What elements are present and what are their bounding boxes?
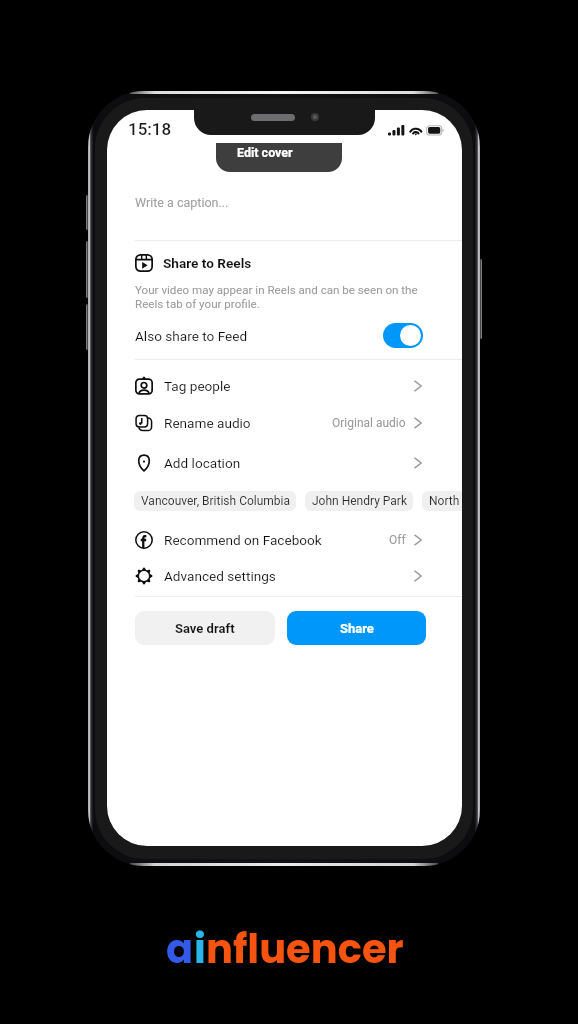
other: Open [412, 457, 424, 469]
button[interactable]: North Vancouver [422, 491, 462, 511]
staticText: Save draft [175, 621, 235, 636]
staticText: Vancouver, British Columbia [141, 494, 291, 508]
staticText: Also share to Feed [135, 328, 248, 344]
staticText: Original audio [332, 416, 406, 430]
button[interactable]: Recommend on Facebook [135, 523, 424, 557]
button[interactable]: Share [287, 611, 426, 645]
staticText: Share [340, 621, 374, 636]
button[interactable]: Tag people [135, 369, 424, 403]
button[interactable]: Also share to Feed [135, 321, 375, 351]
button[interactable]: Advanced settings [135, 559, 424, 593]
staticText: Rename audio [164, 415, 251, 431]
staticText: John Hendry Park [312, 494, 408, 508]
staticText: Your video may appear in Reels and can b… [135, 283, 418, 311]
staticText: Advanced settings [164, 568, 276, 584]
other: Open [412, 380, 424, 392]
button[interactable]: Add location [135, 446, 424, 480]
staticText: Recommend on Facebook [164, 532, 322, 548]
button[interactable] [383, 323, 423, 348]
staticText: i [194, 921, 206, 977]
button[interactable]: John Hendry Park [305, 491, 413, 511]
staticText: 15:18 [128, 119, 172, 139]
button[interactable]: Edit cover [216, 143, 342, 172]
staticText: Share to Reels [163, 255, 252, 271]
staticText: nfluencer [206, 921, 404, 977]
other: Open [412, 417, 424, 429]
other: Open [412, 570, 424, 582]
other: Open [412, 534, 424, 546]
staticText: Write a caption... [135, 195, 229, 210]
staticText: Off [389, 533, 406, 547]
staticText: a [166, 921, 194, 977]
staticText: North Vancouver [429, 494, 462, 508]
staticText: Tag people [164, 378, 231, 394]
staticText: Edit cover [237, 145, 293, 160]
button[interactable]: Vancouver, British Columbia [134, 491, 296, 511]
staticText: Add location [164, 455, 241, 471]
button[interactable]: Save draft [135, 611, 275, 645]
button[interactable]: Rename audio [135, 406, 424, 440]
